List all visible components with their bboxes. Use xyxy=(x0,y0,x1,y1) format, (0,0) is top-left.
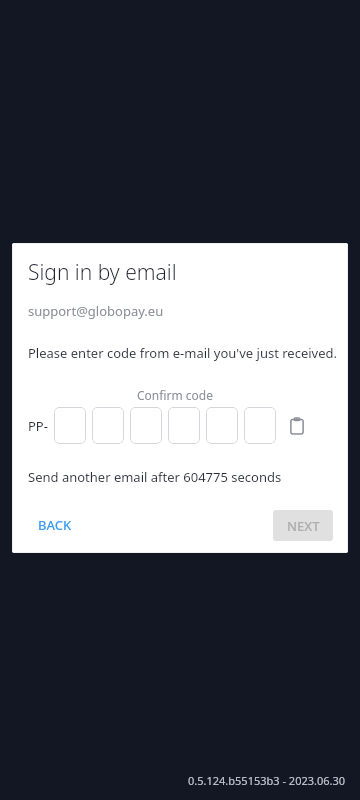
button[interactable]: Code digit 3 xyxy=(130,407,162,444)
button[interactable]: Code digit 6 xyxy=(244,407,276,444)
button[interactable]: NEXT xyxy=(273,510,333,541)
staticText: PP- xyxy=(28,417,48,435)
button[interactable]: Code digit 4 xyxy=(168,407,200,444)
button[interactable]: Code digit 5 xyxy=(206,407,238,444)
button[interactable]: Code digit 2 xyxy=(92,407,124,444)
staticText: Confirm code xyxy=(64,387,286,403)
staticText: support@globopay.eu xyxy=(28,302,164,320)
staticText: Send another email after 604775 seconds xyxy=(28,468,282,486)
staticText: 0.5.124.b55153b3 - 2023.06.30 xyxy=(188,773,346,788)
staticText: Sign in by email xyxy=(28,258,177,287)
staticText: BACK xyxy=(38,516,72,534)
button[interactable]: Code digit 1 xyxy=(54,407,86,444)
staticText: Please enter code from e-mail you've jus… xyxy=(28,344,338,362)
staticText: NEXT xyxy=(287,517,320,535)
button[interactable]: BACK xyxy=(28,507,82,543)
button[interactable]: Paste from clipboard xyxy=(284,413,310,439)
